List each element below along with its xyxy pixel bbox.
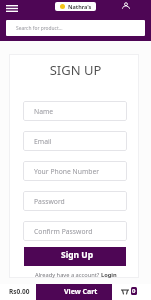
staticText: View Cart bbox=[64, 287, 98, 297]
staticText: Email bbox=[34, 137, 52, 146]
staticText: Search for product... bbox=[16, 25, 63, 32]
button[interactable]: Account bbox=[119, 0, 133, 14]
staticText: Confirm Password bbox=[34, 227, 93, 236]
button[interactable]: View Cart bbox=[36, 284, 112, 300]
staticText: 0 bbox=[132, 287, 136, 295]
staticText: Rs0.00 bbox=[9, 287, 30, 296]
button[interactable]: Menu bbox=[4, 0, 20, 16]
button[interactable]: Cart bbox=[121, 287, 129, 295]
staticText: Password bbox=[34, 197, 65, 206]
button[interactable]: Password bbox=[23, 191, 127, 211]
button[interactable]: Confirm Password bbox=[23, 221, 127, 241]
staticText: Name bbox=[34, 107, 54, 116]
button[interactable]: Nathra's bbox=[55, 2, 96, 11]
button[interactable]: Search for product... bbox=[6, 20, 145, 36]
staticText: SIGN UP bbox=[0, 61, 151, 79]
staticText: Already have a account? bbox=[35, 271, 101, 279]
button[interactable]: Email bbox=[23, 131, 127, 151]
button[interactable]: Login bbox=[101, 271, 117, 279]
staticText: Nathra's bbox=[68, 3, 92, 10]
button[interactable]: Your Phone Number bbox=[23, 161, 127, 181]
staticText: Your Phone Number bbox=[34, 167, 100, 176]
button[interactable]: Name bbox=[23, 101, 127, 121]
button[interactable]: Sign Up bbox=[24, 247, 126, 266]
staticText: Sign Up bbox=[61, 249, 94, 261]
